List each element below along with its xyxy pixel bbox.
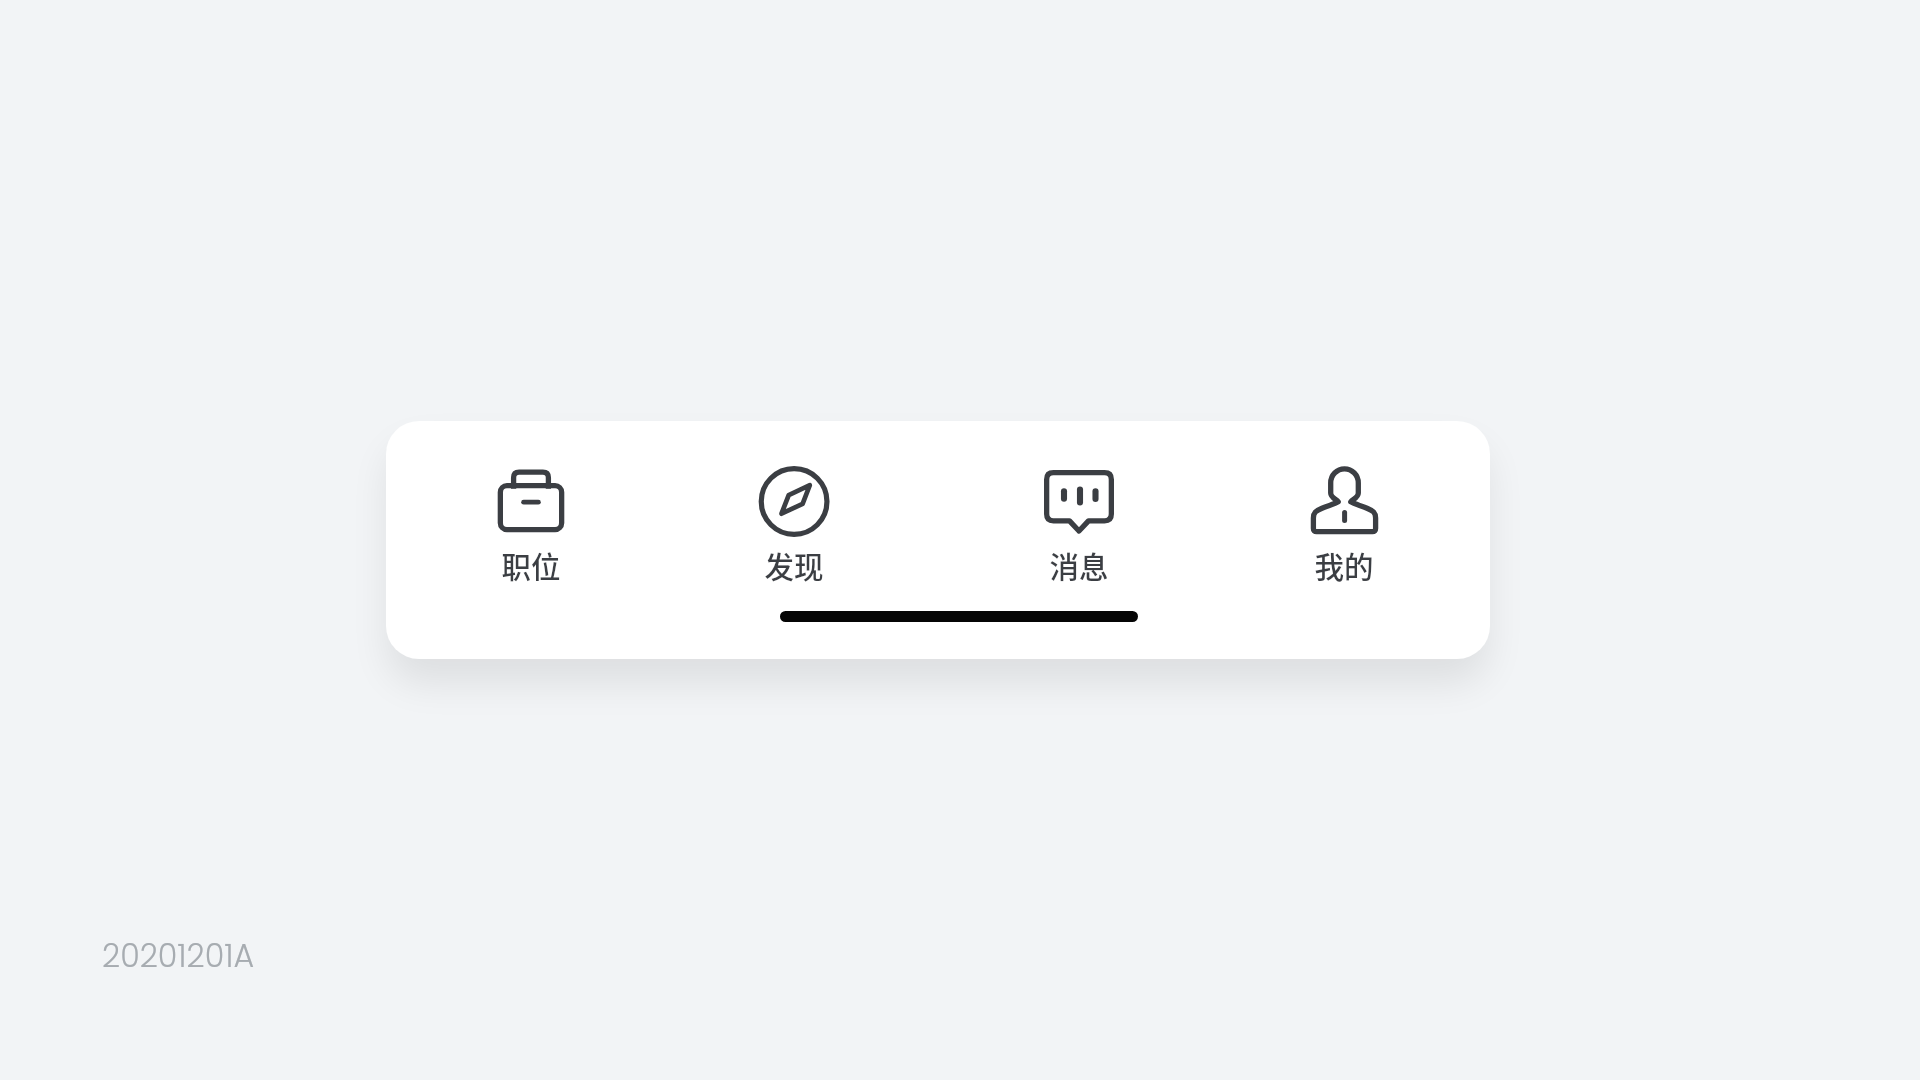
staticText: 消息: [1049, 544, 1109, 587]
button[interactable]: Messages: [959, 440, 1199, 600]
staticText: 我的: [1314, 544, 1374, 587]
button[interactable]: Profile: [1224, 440, 1464, 600]
button[interactable]: Jobs: [411, 440, 651, 600]
staticText: 发现: [764, 544, 824, 587]
button[interactable]: Home indicator: [780, 611, 1138, 622]
button[interactable]: Discover: [674, 440, 914, 600]
staticText: 20201201A: [102, 934, 255, 978]
staticText: 职位: [501, 544, 561, 587]
